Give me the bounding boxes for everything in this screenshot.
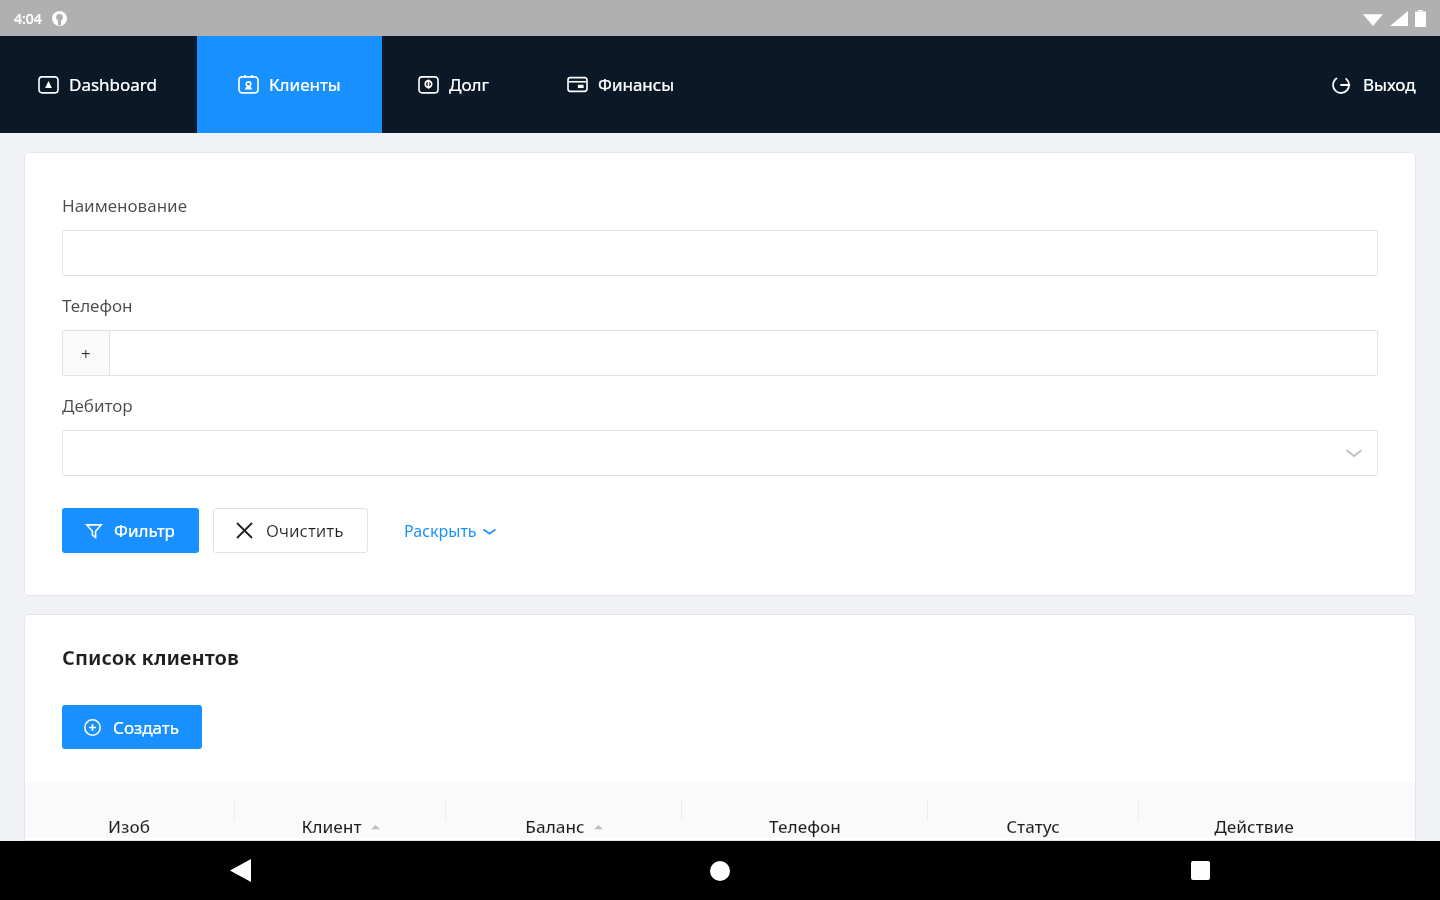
staticText: Изоб [108,815,150,838]
button[interactable]: Раскрыть [400,512,499,550]
button[interactable]: Баланс [446,782,681,838]
button[interactable]: Долг [382,36,525,133]
staticText: Создать [113,716,180,739]
staticText: Клиенты [269,73,341,96]
staticText: Телефон [62,294,133,317]
button[interactable]: + [62,330,1378,376]
staticText: Dashboard [69,73,158,96]
staticText: Фильтр [114,519,175,542]
staticText: Долг [449,73,489,96]
button[interactable]: Home [480,841,960,900]
button[interactable]: Back [0,841,480,900]
staticText: Список клиентов [62,644,239,671]
button[interactable] [62,430,1378,476]
staticText: Статус [1006,815,1060,838]
staticText: Финансы [598,73,675,96]
button[interactable]: Выход [1307,36,1440,133]
button[interactable]: Телефон [682,782,927,838]
staticText: 4:04 [14,9,42,28]
button[interactable]: Действие [1139,782,1369,838]
button[interactable]: Dashboard [0,36,197,133]
staticText: Наименование [62,194,188,217]
button[interactable]: Клиенты [197,36,382,133]
button[interactable]: Финансы [525,36,717,133]
staticText: Дебитор [62,394,133,417]
button[interactable]: Recent apps [960,841,1440,900]
button[interactable]: Очистить [213,508,368,553]
button[interactable]: Фильтр [62,508,199,553]
button[interactable]: Изоб [24,782,234,838]
staticText: Действие [1214,815,1294,838]
button[interactable]: Клиент [235,782,445,838]
staticText: Раскрыть [404,520,477,542]
staticText: + [81,342,91,365]
staticText: Выход [1363,73,1416,96]
button[interactable]: Создать [62,705,202,749]
staticText: Баланс [525,815,585,838]
button[interactable] [62,230,1378,276]
button[interactable]: Статус [928,782,1138,838]
staticText: Очистить [266,519,344,542]
staticText: Клиент [301,815,362,838]
staticText: Телефон [769,815,841,838]
